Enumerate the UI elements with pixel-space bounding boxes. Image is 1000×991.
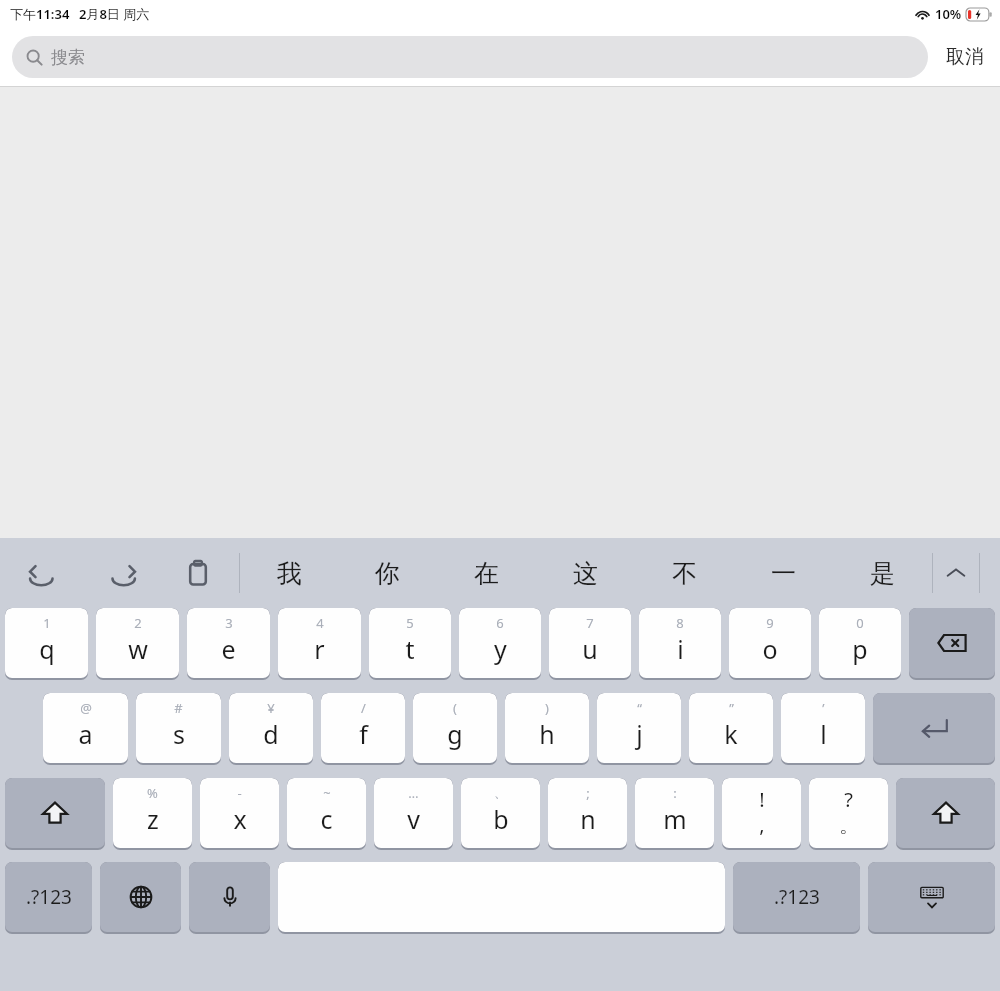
button[interactable]: Hide keyboard (868, 862, 995, 932)
staticText: p (852, 632, 868, 666)
staticText: o (762, 632, 778, 666)
button[interactable]: 3 (187, 608, 270, 678)
button[interactable]: / (321, 693, 405, 763)
button[interactable]: 6 (459, 608, 541, 678)
staticText: .?123 (26, 884, 72, 910)
button[interactable]: 0 (819, 608, 901, 678)
button[interactable]: ? (809, 778, 888, 848)
button[interactable]: Undo (26, 556, 60, 590)
staticText: ) (545, 699, 549, 717)
button[interactable]: 一 (734, 538, 833, 608)
button[interactable]: More candidates (933, 538, 979, 608)
button[interactable]: “ (597, 693, 681, 763)
button[interactable]: Shift (5, 778, 105, 848)
staticText: 一 (771, 558, 796, 589)
staticText: ¥ (267, 699, 275, 717)
staticText: z (147, 802, 159, 836)
staticText: 6 (496, 614, 504, 632)
staticText: r (314, 632, 325, 666)
staticText: m (663, 802, 687, 836)
staticText: 10% (935, 5, 962, 23)
staticText: d (263, 717, 279, 751)
button[interactable]: ’ (781, 693, 865, 763)
button[interactable]: Dictation (189, 862, 270, 932)
button[interactable]: 5 (369, 608, 451, 678)
staticText: ; (586, 784, 590, 802)
staticText: n (580, 802, 596, 836)
staticText: % (147, 784, 158, 802)
button[interactable]: Return (873, 693, 995, 763)
staticText: v (407, 802, 420, 836)
staticText: j (636, 717, 643, 751)
staticText: 是 (870, 558, 895, 589)
button[interactable]: Next keyboard (100, 862, 181, 932)
staticText: : (673, 784, 677, 802)
button[interactable]: ~ (287, 778, 366, 848)
staticText: s (173, 717, 185, 751)
button[interactable]: ; (548, 778, 627, 848)
staticText: u (582, 632, 598, 666)
button[interactable]: Shift (896, 778, 995, 848)
button[interactable]: .?123 (5, 862, 92, 932)
staticText: ’ (822, 699, 825, 717)
button[interactable]: ) (505, 693, 589, 763)
staticText: 这 (573, 558, 598, 589)
button[interactable]: ¥ (229, 693, 313, 763)
staticText: 9 (766, 614, 774, 632)
button[interactable]: 8 (639, 608, 721, 678)
button[interactable]: - (200, 778, 279, 848)
staticText: i (677, 632, 684, 666)
staticText: k (724, 717, 738, 751)
staticText: l (820, 717, 827, 751)
button[interactable]: 7 (549, 608, 631, 678)
button[interactable]: Redo (105, 556, 139, 590)
button[interactable]: # (136, 693, 221, 763)
button[interactable]: 9 (729, 608, 811, 678)
staticText: 2月8日 周六 (79, 5, 150, 23)
button[interactable]: 你 (338, 538, 437, 608)
staticText: / (361, 699, 366, 717)
button[interactable]: : (635, 778, 714, 848)
staticText: 5 (406, 614, 414, 632)
staticText: 你 (375, 558, 400, 589)
button[interactable]: 搜索 (12, 36, 928, 78)
staticText: 8 (676, 614, 684, 632)
staticText: ! (759, 786, 765, 813)
staticText: “ (637, 699, 642, 717)
staticText: , (759, 811, 765, 838)
staticText: 。 (839, 813, 859, 838)
button[interactable]: ” (689, 693, 773, 763)
staticText: w (128, 632, 148, 666)
button[interactable]: ! (722, 778, 801, 848)
button[interactable]: 1 (5, 608, 88, 678)
staticText: f (359, 717, 368, 751)
button[interactable]: 、 (461, 778, 540, 848)
button[interactable]: 是 (833, 538, 932, 608)
button[interactable]: Backspace (909, 608, 995, 678)
button[interactable]: 这 (536, 538, 635, 608)
staticText: 下午11:34 (10, 5, 70, 23)
staticText: # (174, 699, 183, 717)
staticText: .?123 (774, 884, 820, 910)
staticText: 搜索 (51, 47, 85, 68)
staticText: x (233, 802, 247, 836)
button[interactable]: 2 (96, 608, 179, 678)
button[interactable]: .?123 (733, 862, 860, 932)
staticText: 在 (474, 558, 499, 589)
button[interactable]: ( (413, 693, 497, 763)
button[interactable]: 我 (240, 538, 338, 608)
button[interactable]: @ (43, 693, 128, 763)
button[interactable]: Paste (183, 558, 213, 588)
button[interactable]: 在 (437, 538, 536, 608)
staticText: ? (844, 786, 853, 813)
staticText: 4 (316, 614, 324, 632)
button[interactable]: … (374, 778, 453, 848)
staticText: @ (80, 699, 92, 717)
button[interactable]: 取消 (942, 39, 988, 75)
staticText: 1 (43, 614, 51, 632)
button[interactable]: 不 (635, 538, 734, 608)
staticText: h (539, 717, 555, 751)
button[interactable]: 4 (278, 608, 361, 678)
button[interactable]: % (113, 778, 192, 848)
